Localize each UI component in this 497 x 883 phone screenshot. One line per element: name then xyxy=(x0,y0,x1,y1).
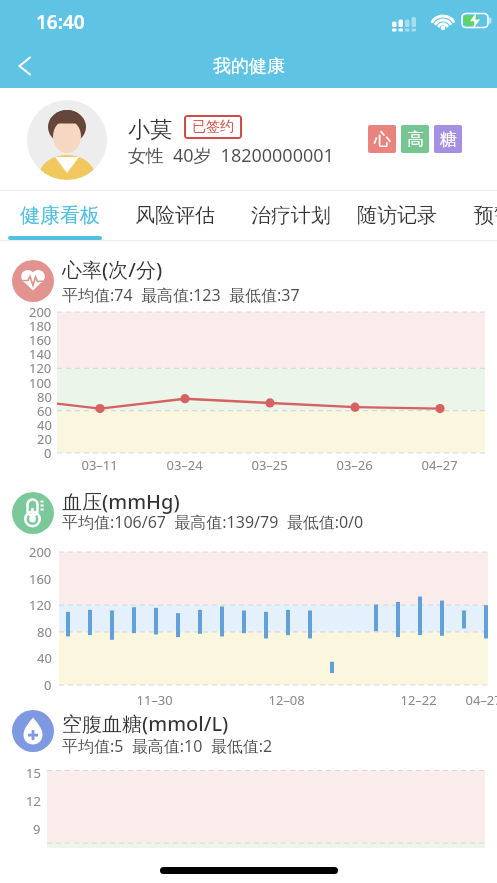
button[interactable] xyxy=(0,536,497,710)
button[interactable]: 糖 xyxy=(434,125,462,153)
staticText: 心率(次/分) xyxy=(62,256,163,283)
button[interactable]: 高 xyxy=(401,125,429,153)
staticText: 预警信息 xyxy=(474,203,497,228)
staticText: 女性 40岁 18200000001 xyxy=(128,143,334,168)
button[interactable]: 健康看板 xyxy=(10,191,110,240)
button[interactable] xyxy=(0,305,497,470)
staticText: 平均值:5 最高值:10 最低值:2 xyxy=(62,735,273,757)
staticText: 糖 xyxy=(440,129,457,150)
button[interactable]: 治疗计划 xyxy=(241,191,341,240)
button[interactable]: 风险评估 xyxy=(125,191,225,240)
staticText: 健康看板 xyxy=(20,203,100,228)
staticText: 16:40 xyxy=(36,9,85,35)
staticText: 高 xyxy=(407,129,424,150)
button[interactable]: 随访记录 xyxy=(347,191,447,240)
staticText: 血压(mmHg) xyxy=(62,488,180,515)
staticText: 风险评估 xyxy=(135,203,215,228)
button[interactable] xyxy=(0,770,497,883)
staticText: 我的健康 xyxy=(213,55,285,78)
staticText: 平均值:74 最高值:123 最低值:37 xyxy=(62,284,300,306)
staticText: 心 xyxy=(374,129,391,150)
staticText: 空腹血糖(mmol/L) xyxy=(62,710,229,737)
staticText: 已签约 xyxy=(192,118,234,136)
staticText: 随访记录 xyxy=(357,203,437,228)
staticText: 平均值:106/67 最高值:139/79 最低值:0/0 xyxy=(62,511,364,533)
staticText: 治疗计划 xyxy=(251,203,331,228)
button[interactable] xyxy=(6,48,42,84)
button[interactable]: 心 xyxy=(368,125,396,153)
button[interactable]: 预警信息 xyxy=(464,191,497,240)
staticText: 小莫 xyxy=(128,116,172,144)
